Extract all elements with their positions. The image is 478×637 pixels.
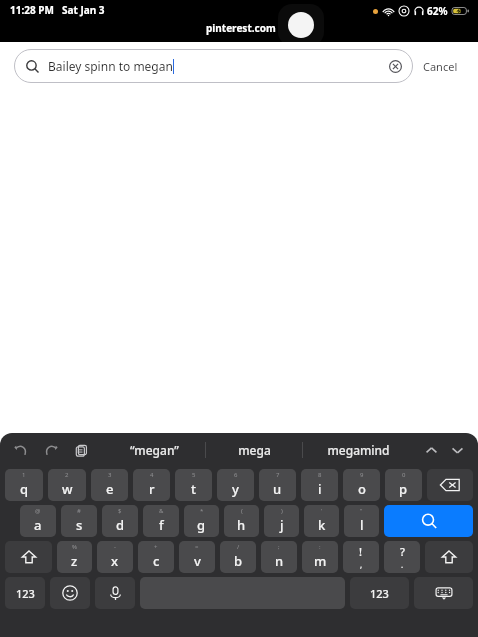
button[interactable]: Undo	[8, 437, 34, 463]
button[interactable]: Backspace	[427, 469, 473, 501]
staticText: 62%	[427, 4, 448, 18]
button[interactable]: Next field	[444, 437, 470, 463]
staticText: :	[319, 543, 321, 551]
button[interactable]: :	[302, 541, 338, 573]
staticText: pinterest.com	[206, 21, 276, 35]
staticText: 0	[402, 471, 406, 479]
button[interactable]: Cancel	[413, 53, 468, 80]
button[interactable]: Voice input	[95, 577, 135, 609]
button[interactable]: 5	[175, 469, 212, 501]
staticText: z	[71, 552, 78, 570]
staticText: '	[321, 507, 323, 515]
button[interactable]: Previous field	[418, 437, 444, 463]
staticText: @	[35, 507, 41, 515]
staticText: k	[318, 516, 326, 534]
button[interactable]: "	[344, 505, 379, 537]
button[interactable]: 6	[217, 469, 254, 501]
button[interactable]: 4	[133, 469, 170, 501]
button[interactable]: @	[20, 505, 56, 537]
button[interactable]: 9	[343, 469, 380, 501]
staticText: Sat Jan 3	[62, 3, 105, 17]
staticText: 5	[192, 471, 196, 479]
staticText: f	[159, 516, 164, 534]
button[interactable]: mega	[206, 433, 302, 467]
button[interactable]: 123	[5, 577, 45, 609]
staticText: s	[76, 516, 83, 534]
staticText: b	[234, 552, 243, 570]
staticText: y	[232, 480, 239, 498]
staticText: p	[399, 480, 408, 498]
button[interactable]: megamind	[303, 433, 414, 467]
staticText: !	[359, 544, 363, 559]
button[interactable]: Emoji	[50, 577, 90, 609]
staticText: d	[116, 516, 125, 534]
button[interactable]: Redo	[38, 437, 64, 463]
button[interactable]: ;	[261, 541, 297, 573]
staticText: r	[149, 480, 155, 498]
staticText: a	[34, 516, 42, 534]
button[interactable]: 123	[350, 577, 409, 609]
staticText: t	[191, 480, 196, 498]
button[interactable]: Shift	[425, 541, 473, 573]
staticText: megamind	[327, 442, 390, 458]
button[interactable]: ?	[384, 541, 420, 573]
button[interactable]: $	[102, 505, 138, 537]
staticText: q	[20, 480, 29, 498]
staticText: 8	[318, 471, 322, 479]
button[interactable]: 7	[259, 469, 296, 501]
staticText: w	[62, 480, 73, 498]
staticText: .	[401, 559, 404, 570]
staticText: l	[360, 516, 364, 534]
staticText: 4	[150, 471, 154, 479]
button[interactable]: Search	[384, 505, 473, 537]
button[interactable]: Clear search text	[385, 56, 405, 76]
button[interactable]: %	[57, 541, 92, 573]
button[interactable]: Shift	[5, 541, 52, 573]
staticText: 1	[22, 471, 26, 479]
button[interactable]: #	[61, 505, 97, 537]
button[interactable]: 0	[385, 469, 422, 501]
staticText: )	[281, 507, 283, 515]
button[interactable]: 3	[91, 469, 128, 501]
staticText: %	[72, 543, 77, 551]
staticText: (	[241, 507, 243, 515]
button[interactable]: '	[304, 505, 339, 537]
staticText: “megan”	[130, 442, 179, 458]
staticText: "	[360, 507, 363, 515]
staticText: 3	[108, 471, 112, 479]
button[interactable]: =	[179, 541, 215, 573]
button[interactable]: 8	[301, 469, 338, 501]
button[interactable]: -	[97, 541, 133, 573]
button[interactable]: !	[343, 541, 379, 573]
staticText: n	[275, 552, 284, 570]
staticText: x	[111, 552, 119, 570]
staticText: 6	[234, 471, 238, 479]
staticText: o	[358, 480, 366, 498]
button[interactable]: 2	[48, 469, 86, 501]
staticText: /	[237, 543, 240, 551]
staticText: i	[318, 480, 322, 498]
button[interactable]: *	[184, 505, 219, 537]
staticText: ;	[278, 543, 280, 551]
staticText: e	[106, 480, 114, 498]
button[interactable]: Bailey spinn to megan	[14, 49, 413, 83]
staticText: m	[314, 552, 327, 570]
button[interactable]: Paste from clipboard	[68, 437, 94, 463]
staticText: g	[197, 516, 206, 534]
button[interactable]: 1	[5, 469, 43, 501]
button[interactable]: /	[220, 541, 256, 573]
staticText: ,	[360, 559, 363, 570]
button[interactable]: +	[138, 541, 174, 573]
button[interactable]: &	[143, 505, 179, 537]
staticText: +	[154, 543, 158, 551]
staticText: u	[273, 480, 282, 498]
staticText: 11:28 PM	[10, 3, 54, 17]
button[interactable]: “megan”	[104, 433, 205, 467]
staticText: $	[118, 507, 122, 515]
button[interactable]: )	[264, 505, 299, 537]
staticText: -	[114, 543, 116, 551]
button[interactable]: Hide keyboard	[414, 577, 473, 609]
staticText: Cancel	[423, 59, 458, 74]
button[interactable]: (	[224, 505, 259, 537]
